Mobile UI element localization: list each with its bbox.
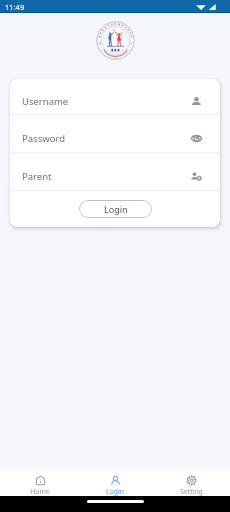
button[interactable]: Login [79, 200, 152, 218]
staticText: Username [22, 95, 191, 108]
button[interactable]: Home [4, 470, 76, 496]
staticText: 11:49 [5, 2, 25, 12]
staticText: Password [22, 132, 191, 145]
button[interactable]: Password [10, 115, 220, 153]
staticText: Home [30, 487, 50, 496]
staticText: Login [106, 487, 124, 496]
button[interactable]: Select parent account [191, 171, 202, 182]
staticText: Login [104, 203, 128, 215]
staticText: Parent [22, 170, 191, 183]
button[interactable]: Login [79, 470, 151, 496]
button[interactable]: Show password [191, 133, 202, 144]
button[interactable]: Setting [155, 470, 227, 496]
staticText: Setting [180, 487, 203, 496]
button[interactable]: Username [191, 96, 202, 107]
button[interactable]: Parent [10, 153, 220, 191]
button[interactable]: Username [10, 79, 220, 115]
